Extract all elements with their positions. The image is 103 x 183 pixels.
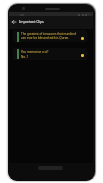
- button[interactable]: [9, 16, 93, 29]
- button[interactable]: [81, 54, 84, 57]
- button[interactable]: [13, 48, 87, 60]
- staticText: can ever be blessed with is Quran.: [21, 36, 70, 40]
- button[interactable]: Important Clips: [19, 19, 44, 24]
- staticText: You memorize a st?: [21, 50, 49, 54]
- staticText: No..?: [21, 55, 29, 59]
- staticText: Important Clips: [19, 19, 44, 24]
- button[interactable]: [12, 20, 16, 24]
- button[interactable]: [81, 37, 84, 40]
- staticText: The greatest of treasures that mankind: [21, 32, 77, 36]
- button[interactable]: [13, 30, 87, 42]
